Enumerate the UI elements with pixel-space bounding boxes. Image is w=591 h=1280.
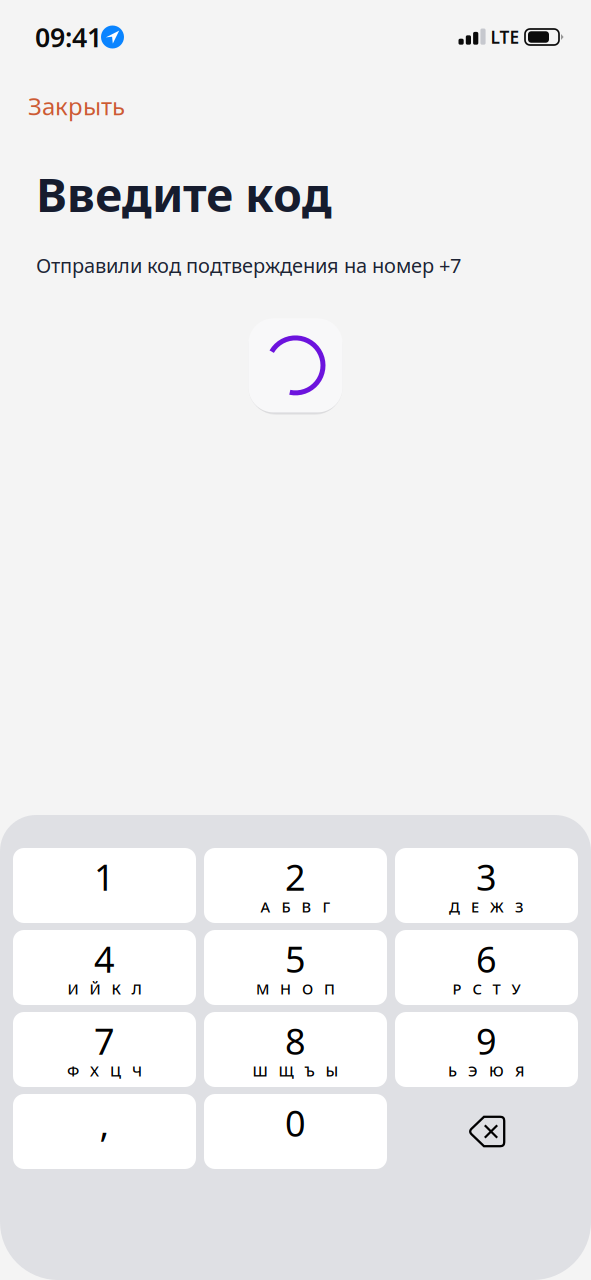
staticText: Р (452, 979, 461, 998)
button[interactable]: Закрыть (0, 80, 153, 132)
staticText: Ы (325, 1061, 338, 1080)
staticText: Г (322, 897, 330, 916)
staticText: У (511, 979, 520, 998)
staticText: Ф (67, 1061, 79, 1080)
staticText: Ж (490, 897, 504, 916)
staticText: 9 (476, 1017, 497, 1065)
staticText: Й (89, 979, 100, 998)
button[interactable]: 2 (204, 848, 387, 923)
staticText: Н (280, 979, 291, 998)
staticText: З (515, 897, 524, 916)
staticText: 5 (285, 935, 306, 983)
staticText: Я (515, 1061, 525, 1080)
staticText: А (260, 897, 270, 916)
staticText: Ю (489, 1061, 504, 1080)
button[interactable]: 3 (395, 848, 578, 923)
staticText: 09:41 (35, 19, 102, 55)
staticText: Х (90, 1061, 99, 1080)
staticText: 8 (285, 1017, 306, 1065)
staticText: К (111, 979, 120, 998)
staticText: Б (281, 897, 290, 916)
staticText: П (324, 979, 335, 998)
staticText: Ц (110, 1061, 121, 1080)
staticText: Щ (278, 1061, 293, 1080)
staticText: Ъ (304, 1061, 314, 1080)
staticText: Ч (132, 1061, 142, 1080)
button[interactable]: 6 (395, 930, 578, 1005)
staticText: 3 (476, 853, 497, 901)
button[interactable]: , (13, 1094, 196, 1169)
staticText: Л (131, 979, 141, 998)
staticText: 4 (94, 935, 115, 983)
staticText: О (302, 979, 313, 998)
button[interactable]: 7 (13, 1012, 196, 1087)
staticText: LTE (490, 25, 519, 48)
staticText: 7 (94, 1017, 115, 1065)
button[interactable]: 1 (13, 848, 196, 923)
button[interactable]: 0 (204, 1094, 387, 1169)
staticText: Е (471, 897, 479, 916)
staticText: Д (449, 897, 460, 916)
button[interactable]: 9 (395, 1012, 578, 1087)
staticText: 6 (476, 935, 497, 983)
button[interactable]: 4 (13, 930, 196, 1005)
staticText: С (472, 979, 481, 998)
staticText: 0 (285, 1099, 306, 1147)
staticText: Ш (252, 1061, 267, 1080)
button[interactable]: 8 (204, 1012, 387, 1087)
staticText: Отправили код подтверждения на номер +7 (36, 252, 461, 278)
button[interactable]: 5 (204, 930, 387, 1005)
staticText: Введите код (36, 163, 332, 225)
staticText: М (256, 979, 269, 998)
staticText: Закрыть (28, 90, 125, 122)
button[interactable]: Удалить (395, 1094, 578, 1169)
staticText: , (99, 1099, 109, 1147)
staticText: И (67, 979, 78, 998)
staticText: Э (468, 1061, 478, 1080)
staticText: Т (492, 979, 500, 998)
staticText: Ь (448, 1061, 457, 1080)
staticText: В (301, 897, 311, 916)
staticText: 1 (94, 853, 115, 901)
staticText: 2 (285, 853, 306, 901)
